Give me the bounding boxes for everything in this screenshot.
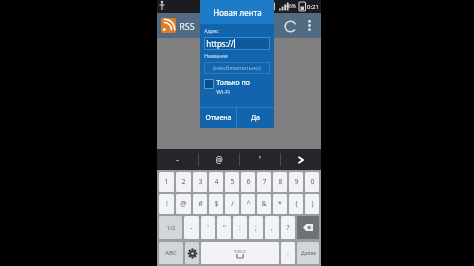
staticText: 7 [262,177,267,187]
button[interactable]: ! [159,194,174,214]
button[interactable]: 0 [305,172,319,192]
staticText: Да [251,113,260,123]
button[interactable]: & [257,194,271,214]
button[interactable]: # [193,194,207,214]
button[interactable]: Space [201,242,279,264]
staticText: 46% [286,3,296,10]
button[interactable]: Keyboard settings [185,242,199,264]
staticText: 0:21 [307,3,319,11]
staticText: 0 [310,177,315,187]
button[interactable]: 3 [193,172,207,192]
staticText: # [198,199,203,209]
button[interactable]: @ [199,149,239,170]
staticText: 3 [198,177,203,187]
staticText: ' [207,223,209,233]
button[interactable]: 6 [241,172,255,192]
staticText: @ [215,154,223,165]
staticText: ? [286,223,290,233]
button[interactable]: - [157,149,198,170]
button[interactable]: . [281,242,295,264]
button[interactable]: 4 [209,172,223,192]
staticText: Далее [301,250,316,257]
button[interactable]: ^ [241,194,255,214]
button[interactable]: 8 [273,172,287,192]
button[interactable]: 7 [257,172,271,192]
button[interactable]: Да [237,108,274,128]
button[interactable]: 9 [289,172,303,192]
button[interactable]: ) [305,194,319,214]
staticText: / [231,199,234,209]
staticText: ABC [165,249,177,257]
button[interactable]: App icon [161,18,176,33]
staticText: Только по [216,78,250,88]
button[interactable]: / [225,194,239,214]
staticText: ; [255,223,257,233]
button[interactable]: Expand suggestions [281,149,321,170]
button[interactable]: * [273,194,287,214]
staticText: (необязательно) [213,64,261,72]
staticText: ( [295,199,298,209]
button[interactable]: Далее [297,242,319,264]
button[interactable]: Только по [204,78,270,96]
button[interactable]: https:// [204,37,270,50]
staticText: * [278,199,282,209]
staticText: 1/2 [166,224,176,232]
button[interactable]: 1/2 [159,216,182,239]
button[interactable]: : [233,216,247,239]
button[interactable]: ( [289,194,303,214]
button[interactable]: 5 [225,172,239,192]
button[interactable]: Refresh [279,15,301,37]
button[interactable]: ' [201,216,215,239]
button[interactable]: - [184,216,199,239]
staticText: ^ [246,199,251,209]
button[interactable]: $ [209,194,223,214]
staticText: 4 [214,177,219,187]
staticText: Название [204,53,228,60]
staticText: RSS [179,20,195,32]
staticText: 8 [278,177,283,187]
button[interactable]: @ [176,194,191,214]
button[interactable]: ? [281,216,295,239]
staticText: https:// [206,38,234,49]
staticText: Новая лента [213,7,262,18]
button[interactable]: More options [301,13,317,38]
button[interactable]: , [265,216,279,239]
staticText: Отмена [205,113,232,123]
button[interactable]: " [217,216,231,239]
button[interactable]: ' [240,149,280,170]
staticText: ! [166,199,168,209]
button[interactable]: ABC [159,242,183,264]
button[interactable]: (необязательно) [204,62,270,74]
staticText: : [239,223,241,233]
staticText: 1 [164,177,169,187]
staticText: 9 [294,177,299,187]
staticText: . [287,248,289,258]
button[interactable]: 2 [176,172,191,192]
staticText: & [261,199,267,209]
button[interactable]: Backspace [297,216,319,239]
staticText: Адрес [204,28,219,35]
staticText: ) [311,199,314,209]
staticText: $ [214,199,219,209]
staticText: 2 [181,177,186,187]
staticText: , [271,223,273,233]
button[interactable]: 1 [159,172,174,192]
staticText: Wi-Fi [216,88,230,96]
staticText: @ [180,199,187,209]
staticText: - [176,154,179,165]
staticText: " [223,223,226,233]
button[interactable]: ; [249,216,263,239]
staticText: - [190,223,193,233]
staticText: ENGUS [234,249,246,254]
staticText: ' [259,154,261,165]
staticText: 6 [246,177,251,187]
staticText: 5 [230,177,235,187]
button[interactable]: Отмена [200,108,236,128]
